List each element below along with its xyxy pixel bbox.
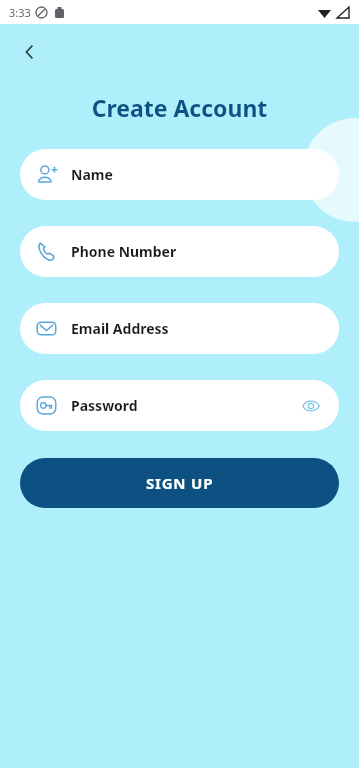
staticText: SIGN UP: [146, 473, 214, 493]
button[interactable]: Name: [20, 149, 339, 200]
button[interactable]: SIGN UP: [20, 458, 339, 508]
button[interactable]: Password: [20, 380, 339, 431]
staticText: 3:33: [9, 5, 31, 20]
staticText: Email Address: [71, 319, 169, 338]
staticText: Create Account: [0, 92, 359, 123]
button[interactable]: Phone Number: [20, 226, 339, 277]
button[interactable]: Back: [10, 32, 50, 72]
staticText: Password: [71, 396, 138, 415]
staticText: Phone Number: [71, 242, 177, 261]
button[interactable]: Show password: [299, 394, 323, 418]
button[interactable]: Email Address: [20, 303, 339, 354]
staticText: Name: [71, 165, 113, 184]
